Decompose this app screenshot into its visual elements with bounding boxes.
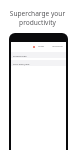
button[interactable]: Project plan	[11, 52, 66, 58]
staticText: Upcoming	[52, 45, 63, 48]
button[interactable]: Upcoming	[52, 45, 63, 48]
staticText: Project plan	[13, 54, 27, 57]
staticText: Sync with Jane	[13, 62, 30, 65]
staticText: Today	[38, 45, 45, 48]
staticText: Supercharge your	[0, 9, 75, 18]
staticText: productivity	[0, 18, 75, 27]
button[interactable]: Today	[38, 45, 45, 48]
button[interactable]: Sync with Jane	[11, 60, 66, 66]
